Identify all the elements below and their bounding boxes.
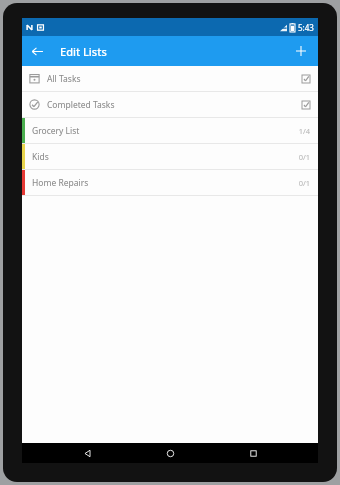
button[interactable]: All Tasks — [22, 66, 318, 91]
staticText: Completed Tasks — [47, 99, 115, 111]
staticText: 5:43 — [298, 22, 314, 33]
staticText: Edit Lists — [60, 44, 107, 59]
button[interactable]: Back — [77, 443, 97, 463]
staticText: Grocery List — [32, 125, 80, 137]
button[interactable]: Kids — [22, 144, 318, 169]
button[interactable]: Toggle visibility for Completed Tasks — [293, 92, 318, 117]
staticText: 1/4 — [298, 126, 310, 136]
staticText: Kids — [32, 151, 49, 163]
staticText: All Tasks — [47, 73, 81, 85]
button[interactable]: Home Repairs — [22, 170, 318, 195]
button[interactable]: Recent apps — [243, 443, 263, 463]
button[interactable]: Grocery List — [22, 118, 318, 143]
button[interactable]: Completed Tasks — [22, 92, 318, 117]
button[interactable]: Home — [160, 443, 180, 463]
button[interactable]: Back — [22, 36, 52, 66]
button[interactable]: Toggle visibility for All Tasks — [293, 66, 318, 91]
button[interactable]: Add list — [286, 36, 316, 66]
staticText: 0/1 — [298, 152, 310, 162]
staticText: Home Repairs — [32, 177, 89, 189]
staticText: 0/1 — [298, 178, 310, 188]
